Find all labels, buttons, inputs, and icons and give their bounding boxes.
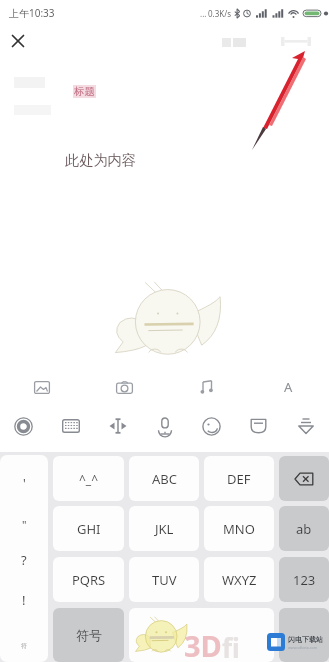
staticText: ! xyxy=(22,591,26,609)
button[interactable]: Voice input xyxy=(141,400,188,452)
staticText: 符 xyxy=(21,642,27,650)
staticText: fi xyxy=(222,630,240,662)
staticText: ab xyxy=(296,520,312,538)
button[interactable]: Enter xyxy=(279,608,329,662)
button[interactable]: Done xyxy=(281,37,311,46)
staticText: 符号 xyxy=(76,627,102,643)
button[interactable]: Take photo xyxy=(83,374,165,400)
staticText: PQRS xyxy=(72,571,106,589)
button[interactable]: Close xyxy=(4,27,32,55)
button[interactable]: Hide keyboard xyxy=(282,400,329,452)
staticText: 123 xyxy=(293,571,316,589)
button[interactable]: 符号 xyxy=(53,608,124,662)
staticText: ABC xyxy=(152,470,177,488)
button[interactable]: Emoji xyxy=(188,400,235,452)
button[interactable]: Insert audio xyxy=(165,374,247,400)
staticText: 此处为内容 xyxy=(65,151,136,169)
staticText: 3D xyxy=(184,626,222,662)
button[interactable]: GHI xyxy=(53,506,124,551)
button[interactable]: MNO xyxy=(204,506,274,551)
staticText: 上午10:33 xyxy=(9,6,55,20)
staticText: TUV xyxy=(152,571,177,589)
staticText: " xyxy=(22,517,27,532)
staticText: A xyxy=(284,378,293,396)
button[interactable]: Insert image xyxy=(0,374,83,400)
staticText: ' xyxy=(23,475,26,491)
button[interactable]: ^_^ xyxy=(53,456,124,501)
button[interactable] xyxy=(129,608,274,662)
staticText: www.sdbeta.com xyxy=(288,645,317,650)
button[interactable]: WXYZ xyxy=(204,557,274,602)
staticText: ^_^ xyxy=(79,471,99,487)
staticText: DEF xyxy=(227,470,251,488)
staticText: JKL xyxy=(155,520,174,538)
staticText: 闪电下载站 xyxy=(288,635,323,644)
button[interactable]: Input method logo xyxy=(0,400,47,452)
button[interactable]: ABC xyxy=(129,456,199,501)
staticText: WXYZ xyxy=(222,571,257,589)
button[interactable]: Clipboard xyxy=(235,400,282,452)
button[interactable]: TUV xyxy=(129,557,199,602)
button[interactable]: Text format xyxy=(247,374,329,400)
staticText: 0.3K/s xyxy=(208,8,232,19)
staticText: ? xyxy=(21,551,27,569)
button[interactable]: Move cursor xyxy=(94,400,141,452)
button[interactable]: PQRS xyxy=(53,557,124,602)
button[interactable]: Backspace xyxy=(279,456,329,501)
button[interactable]: Keyboard layout xyxy=(47,400,94,452)
button[interactable]: ' xyxy=(0,455,48,662)
button[interactable]: 123 xyxy=(279,557,329,602)
staticText: ... xyxy=(200,8,207,19)
button[interactable]: DEF xyxy=(204,456,274,501)
staticText: GHI xyxy=(77,520,101,538)
button[interactable]: Menu xyxy=(222,38,246,47)
button[interactable]: ab xyxy=(279,506,329,551)
staticText: 标题 xyxy=(74,85,95,98)
button[interactable]: JKL xyxy=(129,506,199,551)
staticText: MNO xyxy=(223,520,255,538)
